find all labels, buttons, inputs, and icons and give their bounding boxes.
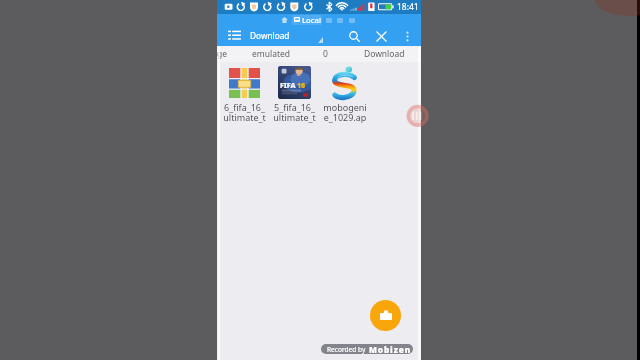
button[interactable]: Home — [278, 14, 290, 26]
staticText: mobogeni e_1029.ap — [323, 101, 367, 123]
button[interactable]: Close — [371, 26, 391, 46]
staticText: FIFA — [280, 81, 296, 91]
staticText: 16 — [297, 81, 306, 91]
button[interactable]: 6_fifa_16_ ultimate_t — [219, 63, 269, 123]
staticText: ge — [217, 48, 228, 60]
button[interactable]: Download — [248, 26, 325, 46]
button[interactable]: mobogeni e_1029.ap — [320, 63, 370, 123]
staticText: 0 — [323, 48, 328, 60]
staticText: Download — [250, 30, 290, 41]
button[interactable]: Tools — [370, 300, 401, 331]
button[interactable]: emulated — [246, 46, 296, 62]
button[interactable]: More options — [398, 27, 416, 45]
button[interactable]: Local — [292, 15, 322, 25]
button[interactable]: Open navigation — [225, 24, 243, 44]
button[interactable]: Tab 2 — [323, 14, 335, 26]
button[interactable]: FIFA — [269, 63, 319, 123]
staticText: Recorded by — [327, 345, 366, 354]
staticText: 18:41 — [397, 1, 419, 13]
staticText: Mobizen — [369, 344, 412, 354]
staticText: 6_fifa_16_ ultimate_t — [223, 101, 266, 123]
button[interactable]: ge — [197, 46, 247, 62]
button[interactable]: 0 — [300, 46, 350, 62]
staticText: emulated — [252, 48, 291, 60]
button[interactable]: Download — [359, 46, 409, 62]
button[interactable]: Tab 3 — [334, 14, 346, 26]
button[interactable]: Search — [344, 26, 364, 46]
button[interactable]: Tab 4 — [346, 14, 358, 26]
staticText: Download — [364, 48, 405, 60]
staticText: 5_fifa_16_ ultimate_t — [273, 101, 316, 123]
staticText: Local — [302, 15, 321, 25]
